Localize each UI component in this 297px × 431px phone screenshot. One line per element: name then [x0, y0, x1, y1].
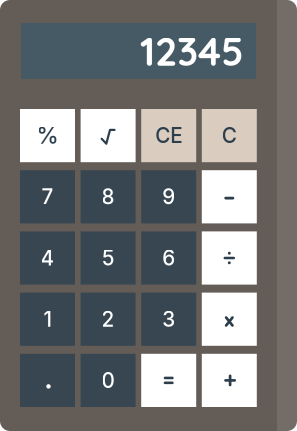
staticText: 4: [40, 245, 54, 270]
button[interactable]: 2: [81, 293, 136, 346]
button[interactable]: 7: [20, 170, 75, 223]
button[interactable]: 5: [81, 231, 136, 285]
button[interactable]: 6: [141, 231, 196, 285]
staticText: 9: [162, 184, 175, 209]
staticText: 8: [102, 184, 115, 209]
button[interactable]: Minus: [202, 170, 257, 223]
staticText: 12345: [140, 26, 244, 76]
button[interactable]: 9: [141, 170, 196, 223]
button[interactable]: 1: [20, 293, 75, 346]
button[interactable]: 4: [20, 231, 75, 285]
staticText: 0: [102, 368, 115, 393]
staticText: 3: [162, 307, 175, 332]
button[interactable]: CE: [141, 109, 196, 162]
button[interactable]: Multiply: [202, 293, 257, 346]
button[interactable]: Plus: [202, 354, 257, 407]
staticText: 5: [102, 245, 114, 270]
staticText: 7: [41, 184, 53, 209]
button[interactable]: C: [202, 109, 257, 162]
button[interactable]: Equals: [141, 354, 196, 407]
staticText: CE: [155, 123, 182, 148]
staticText: 6: [162, 245, 175, 270]
button[interactable]: Decimal point: [20, 354, 75, 407]
button[interactable]: %: [20, 109, 75, 162]
staticText: 1: [43, 307, 51, 332]
button[interactable]: Divide: [202, 231, 257, 285]
button[interactable]: 8: [81, 170, 136, 223]
staticText: C: [222, 123, 237, 148]
button[interactable]: Square root: [81, 109, 136, 162]
staticText: %: [36, 122, 58, 149]
button[interactable]: 0: [81, 354, 136, 407]
staticText: 2: [102, 307, 115, 332]
button[interactable]: 3: [141, 293, 196, 346]
